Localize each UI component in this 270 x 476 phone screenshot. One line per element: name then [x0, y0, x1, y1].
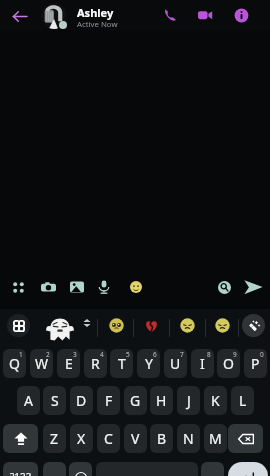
staticText: B	[157, 429, 167, 448]
staticText: R	[91, 354, 100, 373]
staticText: Q	[9, 354, 20, 373]
button[interactable]: Enter	[228, 462, 268, 476]
button[interactable]: H	[150, 386, 173, 415]
button[interactable]: Apps	[7, 314, 30, 337]
button[interactable]: Camera	[36, 275, 60, 299]
staticText: F	[105, 391, 113, 410]
staticText: C	[104, 429, 113, 448]
button[interactable]: Emoji	[124, 275, 148, 299]
staticText: 7	[180, 350, 184, 359]
button[interactable]: L	[231, 386, 254, 415]
button[interactable]: Q	[3, 349, 26, 378]
button[interactable]: D	[70, 386, 93, 415]
button[interactable]: More	[6, 275, 30, 299]
button[interactable]: Emoji suggestion	[105, 314, 127, 336]
staticText: 4	[100, 350, 104, 359]
staticText: 1	[19, 350, 23, 359]
button[interactable]: Expand	[80, 316, 93, 329]
button[interactable]: Video call	[191, 1, 219, 29]
button[interactable]: O	[217, 349, 240, 378]
button[interactable]: Emoji	[69, 462, 92, 476]
button[interactable]: U	[164, 349, 187, 378]
button[interactable]: C	[97, 424, 120, 453]
staticText: 2	[46, 350, 50, 359]
button[interactable]: A	[17, 386, 40, 415]
button[interactable]: P	[244, 349, 267, 378]
button[interactable]: Search	[212, 275, 236, 299]
staticText: L	[239, 391, 247, 410]
staticText: Ashley	[77, 5, 114, 20]
staticText: H	[156, 391, 167, 410]
button[interactable]: G	[124, 386, 147, 415]
staticText: I	[200, 354, 205, 373]
button[interactable]: Z	[43, 424, 66, 453]
button[interactable]: M	[204, 424, 227, 453]
button[interactable]: Emoji suggestion	[176, 314, 198, 336]
button[interactable]: Emoji suggestion	[140, 314, 162, 336]
button[interactable]: Comma	[43, 462, 66, 476]
button[interactable]: B	[150, 424, 173, 453]
button[interactable]: Send	[241, 275, 265, 299]
button[interactable]: W	[30, 349, 53, 378]
button[interactable]: S	[43, 386, 66, 415]
staticText: 0	[260, 350, 264, 359]
staticText: X	[77, 429, 86, 448]
staticText: A	[24, 391, 33, 410]
button[interactable]: Call	[156, 1, 184, 29]
staticText: J	[187, 391, 191, 410]
button[interactable]: Emoji suggestion	[211, 314, 233, 336]
button[interactable]: Gallery	[65, 275, 89, 299]
button[interactable]: E	[57, 349, 80, 378]
staticText: E	[65, 354, 73, 373]
button[interactable]: Microphone	[92, 275, 116, 299]
button[interactable]: I	[191, 349, 214, 378]
button[interactable]: J	[177, 386, 200, 415]
staticText: W	[35, 354, 49, 373]
button[interactable]: Profile	[41, 3, 67, 29]
staticText: ?123	[10, 470, 32, 476]
staticText: U	[170, 354, 181, 373]
staticText: 8	[207, 350, 211, 359]
staticText: D	[76, 391, 87, 410]
staticText: Active Now	[77, 19, 118, 30]
staticText: K	[211, 391, 220, 410]
button[interactable]: ?123	[3, 462, 38, 476]
staticText: 5	[126, 350, 130, 359]
button[interactable]: N	[177, 424, 200, 453]
staticText: S	[51, 391, 59, 410]
button[interactable]: Backspace	[228, 424, 263, 453]
staticText: N	[183, 429, 194, 448]
button[interactable]: V	[124, 424, 147, 453]
button[interactable]: K	[204, 386, 227, 415]
staticText: G	[130, 391, 141, 410]
staticText: P	[251, 354, 260, 373]
button[interactable]: T	[110, 349, 133, 378]
staticText: M	[209, 429, 222, 448]
staticText: 9	[233, 350, 237, 359]
button[interactable]: .	[201, 462, 224, 476]
button[interactable]: F	[97, 386, 120, 415]
staticText: O	[223, 354, 234, 373]
staticText: Z	[50, 429, 59, 448]
button[interactable]: Magic	[242, 314, 265, 337]
button[interactable]: Shift	[3, 424, 38, 453]
button[interactable]: Info	[227, 1, 255, 29]
staticText: Y	[145, 354, 153, 373]
button[interactable]: R	[84, 349, 107, 378]
button[interactable]: Back	[5, 2, 33, 30]
staticText: V	[131, 429, 140, 448]
button[interactable]: Ghost sticker	[43, 312, 76, 345]
staticText: T	[118, 354, 126, 373]
staticText: 3	[73, 350, 77, 359]
staticText: 6	[153, 350, 157, 359]
button[interactable]: Y	[137, 349, 160, 378]
button[interactable]: X	[70, 424, 93, 453]
